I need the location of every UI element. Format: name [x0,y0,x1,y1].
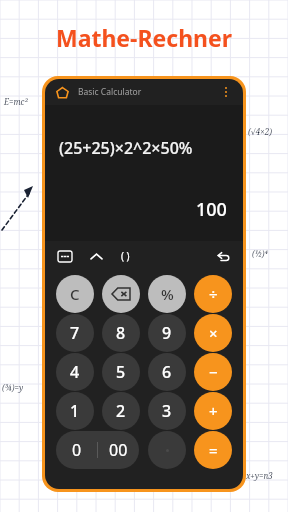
button[interactable]: 7 [56,314,94,352]
staticText: (½)⁴ [252,248,268,259]
button[interactable]: 1 [56,392,94,430]
button[interactable]: Backspace [102,275,140,313]
button[interactable]: More options [220,86,232,98]
staticText: 2 [116,400,126,422]
button[interactable]: − [194,353,232,391]
staticText: ÷ [209,284,218,304]
button[interactable]: ÷ [194,275,232,313]
button[interactable]: 5 [102,353,140,391]
staticText: 8 [116,322,126,344]
button[interactable]: 00 [98,431,139,469]
staticText: × [209,323,218,343]
button[interactable]: 8 [102,314,140,352]
button[interactable]: ( ) [117,248,133,264]
button[interactable]: + [194,392,232,430]
button[interactable]: = [194,431,232,469]
staticText: Mathe-Rechner [0,22,288,53]
button[interactable]: × [194,314,232,352]
button[interactable]: 6 [148,353,186,391]
staticText: E=mc² [4,96,28,107]
button[interactable]: Power [89,249,104,264]
staticText: 7 [70,322,80,344]
button[interactable]: Keyboard layout [58,251,72,262]
button[interactable]: 2 [102,392,140,430]
button[interactable]: 9 [148,314,186,352]
button[interactable]: 4 [56,353,94,391]
staticText: % [161,284,174,304]
button[interactable]: C [56,275,94,313]
staticText: = [209,440,218,460]
staticText: 9 [162,322,172,344]
staticText: − [209,362,218,382]
staticText: + [209,401,218,421]
staticText: (25+25)×2^2×50% [59,137,193,159]
staticText: 5 [116,361,126,383]
button[interactable]: 3 [148,392,186,430]
staticText: Basic Calculator [78,86,142,98]
button[interactable]: Undo [214,248,230,264]
staticText: 100 [196,197,227,222]
staticText: 3 [162,400,172,422]
staticText: 00 [109,439,128,461]
button[interactable]: Decimal point [148,431,186,469]
staticText: (¾)=y [2,382,24,393]
staticText: (√4×2) [248,126,273,137]
staticText: x+y=n3 [246,470,273,481]
staticText: 1 [70,400,80,422]
button[interactable]: % [148,275,186,313]
staticText: C [70,284,80,304]
staticText: 4 [70,361,80,383]
staticText: ( ) [121,249,130,263]
staticText: 0 [72,439,82,461]
other: Home [56,86,69,99]
staticText: 6 [162,361,172,383]
button[interactable]: 0 [56,431,97,469]
